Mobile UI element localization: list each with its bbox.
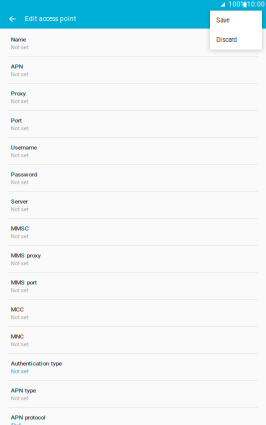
staticText: 10:00	[247, 0, 265, 8]
button[interactable]: MNC	[0, 327, 266, 354]
staticText: APN	[11, 63, 23, 70]
staticText: Not set	[11, 71, 29, 77]
staticText: MMS port	[11, 279, 37, 286]
staticText: 100%	[228, 0, 245, 8]
staticText: IPv4	[11, 422, 21, 425]
staticText: Not set	[11, 233, 29, 239]
staticText: MCC	[11, 306, 24, 313]
staticText: Not set	[11, 179, 29, 185]
button[interactable]: Save	[210, 11, 262, 30]
button[interactable]: MMSC	[0, 219, 266, 246]
staticText: Not set	[11, 368, 29, 374]
staticText: Not set	[11, 125, 29, 131]
staticText: Server	[11, 198, 28, 205]
staticText: Not set	[11, 260, 29, 266]
staticText: Authentication type	[11, 360, 62, 367]
button[interactable]: MCC	[0, 300, 266, 327]
staticText: Not set	[11, 152, 29, 158]
staticText: MNC	[11, 333, 24, 340]
staticText: Port	[11, 117, 22, 124]
staticText: Not set	[11, 98, 29, 104]
staticText: Discard	[216, 36, 237, 43]
staticText: Edit access point	[25, 15, 76, 23]
staticText: Not set	[11, 314, 29, 320]
staticText: Not set	[11, 44, 29, 50]
button[interactable]: APN	[0, 57, 266, 84]
button[interactable]: APN type	[0, 381, 266, 408]
staticText: Save	[216, 17, 229, 24]
button[interactable]: MMS proxy	[0, 246, 266, 273]
staticText: Proxy	[11, 90, 26, 97]
staticText: MMS proxy	[11, 252, 41, 259]
staticText: Not set	[11, 341, 29, 347]
button[interactable]: Discard	[210, 30, 262, 50]
button[interactable]: Port	[0, 111, 266, 138]
staticText: Password	[11, 171, 37, 178]
staticText: MMSC	[11, 225, 29, 232]
button[interactable]: Back	[4, 10, 22, 28]
button[interactable]: MMS port	[0, 273, 266, 300]
button[interactable]: Server	[0, 192, 266, 219]
button[interactable]: Name	[0, 30, 266, 57]
button[interactable]: APN protocol	[0, 408, 266, 425]
button[interactable]: Password	[0, 165, 266, 192]
staticText: APN protocol	[11, 414, 46, 421]
button[interactable]: Username	[0, 138, 266, 165]
staticText: Username	[11, 144, 37, 151]
staticText: Not set	[11, 395, 29, 401]
staticText: Not set	[11, 287, 29, 293]
button[interactable]: Authentication type	[0, 354, 266, 381]
button[interactable]: Proxy	[0, 84, 266, 111]
staticText: Name	[11, 36, 26, 43]
staticText: APN type	[11, 387, 36, 394]
staticText: Not set	[11, 206, 29, 212]
